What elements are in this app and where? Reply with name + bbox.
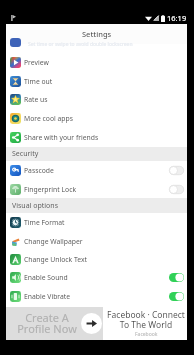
staticText: Set time or swipe to avoid double locksc… bbox=[28, 41, 133, 48]
button[interactable] bbox=[169, 273, 184, 282]
button[interactable]: Change Wallpaper bbox=[6, 232, 187, 250]
button[interactable]: Preview bbox=[6, 53, 187, 72]
staticText: Preview bbox=[24, 58, 49, 67]
button[interactable]: Open ad bbox=[81, 313, 102, 334]
staticText: Facebook bbox=[135, 331, 158, 338]
staticText: Visual options bbox=[12, 201, 59, 211]
button[interactable] bbox=[169, 185, 184, 194]
button[interactable]: Rate us bbox=[6, 90, 187, 109]
staticText: Facebook · Connect To The World bbox=[107, 309, 185, 330]
button[interactable] bbox=[169, 166, 184, 175]
staticText: Passcode bbox=[24, 166, 54, 175]
button[interactable]: Enable Sound bbox=[6, 268, 187, 287]
staticText: Change Wallpaper bbox=[24, 237, 83, 246]
button[interactable] bbox=[169, 292, 184, 301]
button[interactable]: Time Format bbox=[6, 213, 187, 232]
staticText: Create A Profile Now bbox=[17, 310, 77, 337]
staticText: 16:19 bbox=[167, 13, 187, 23]
staticText: Time out bbox=[24, 77, 53, 86]
staticText: Time Format bbox=[24, 218, 65, 227]
staticText: Enable Sound bbox=[24, 273, 68, 282]
staticText: More cool apps bbox=[24, 114, 73, 123]
button[interactable]: More cool apps bbox=[6, 109, 187, 128]
button[interactable]: Share with your friends bbox=[6, 128, 187, 147]
staticText: Settings bbox=[82, 29, 112, 39]
staticText: Rate us bbox=[24, 95, 48, 104]
button[interactable]: Change Unlock Text bbox=[6, 250, 187, 268]
button[interactable]: Fingerprint Lock bbox=[6, 180, 187, 198]
button[interactable]: Enable Vibrate bbox=[6, 287, 187, 305]
button[interactable]: Create A Profile Now bbox=[6, 307, 187, 340]
button[interactable]: Set time or swipe to avoid double locksc… bbox=[6, 44, 187, 53]
staticText: Fingerprint Lock bbox=[24, 185, 77, 194]
staticText: Security bbox=[12, 149, 39, 159]
staticText: Change Unlock Text bbox=[24, 255, 88, 264]
button[interactable]: Time out bbox=[6, 72, 187, 90]
staticText: Share with your friends bbox=[24, 133, 99, 142]
staticText: Enable Vibrate bbox=[24, 292, 71, 301]
button[interactable]: Passcode bbox=[6, 161, 187, 180]
